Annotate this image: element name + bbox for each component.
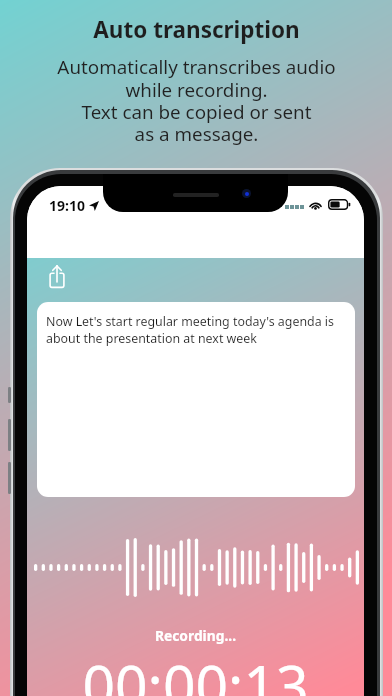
staticText: 00:00:13 — [27, 646, 364, 696]
staticText: Now Let's start regular meeting today's … — [46, 313, 346, 347]
button[interactable]: Share — [42, 263, 72, 290]
staticText: Recording... — [27, 626, 364, 645]
staticText: Auto transcription — [93, 14, 300, 45]
button[interactable]: Now Let's start regular meeting today's … — [37, 302, 355, 497]
staticText: 19:10 — [49, 196, 85, 215]
staticText: Automatically transcribes audio while re… — [57, 54, 336, 146]
